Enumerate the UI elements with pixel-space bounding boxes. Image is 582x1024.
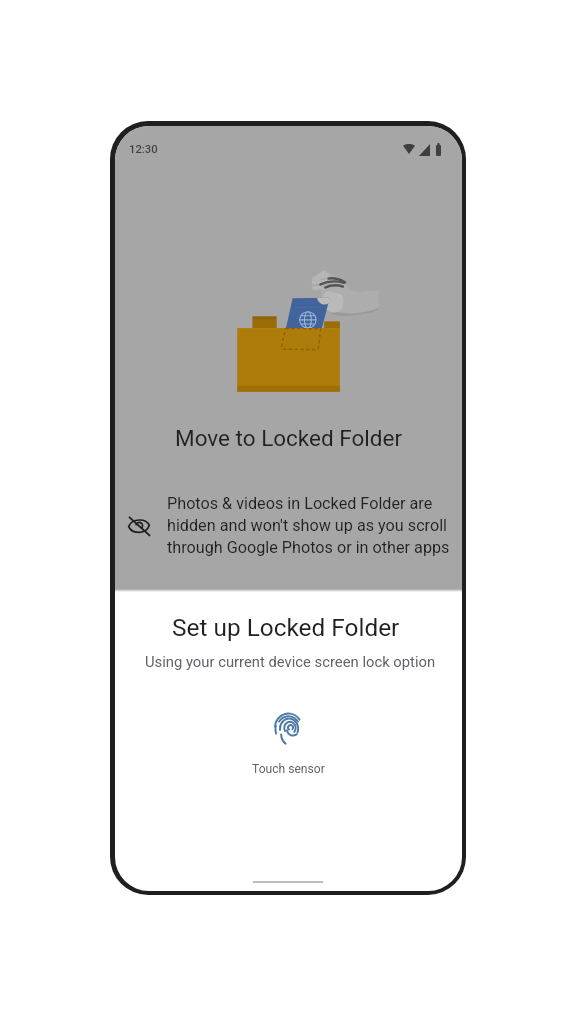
staticText: 12:30 [129, 143, 158, 156]
staticText: Move to Locked Folder [175, 425, 402, 451]
staticText: Photos & videos in Locked Folder are hid… [167, 494, 459, 557]
staticText: Touch sensor [252, 762, 325, 776]
other: Hidden [128, 517, 150, 535]
button[interactable]: Fingerprint sensor [274, 709, 303, 744]
staticText: Set up Locked Folder [172, 613, 400, 642]
staticText: Using your current device screen lock op… [145, 653, 436, 670]
